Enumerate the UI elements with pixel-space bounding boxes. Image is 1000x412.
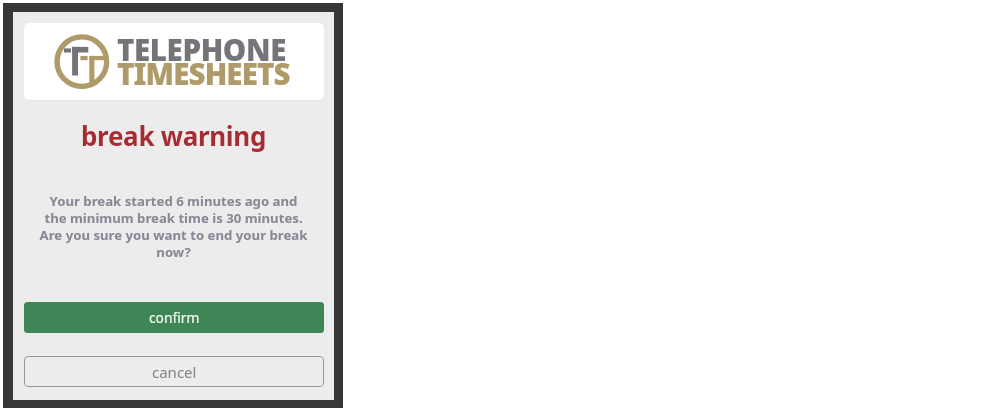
- staticText: TIMESHEETS: [117, 53, 290, 93]
- staticText: confirm: [149, 308, 200, 327]
- button[interactable]: cancel: [24, 356, 324, 387]
- staticText: TELEPHONE: [117, 29, 286, 69]
- button[interactable]: confirm: [24, 302, 324, 333]
- staticText: break warning: [13, 118, 334, 152]
- other: Telephone Timesheets: [24, 23, 324, 100]
- staticText: Your break started 6 minutes ago and the…: [13, 192, 334, 264]
- staticText: cancel: [152, 362, 197, 382]
